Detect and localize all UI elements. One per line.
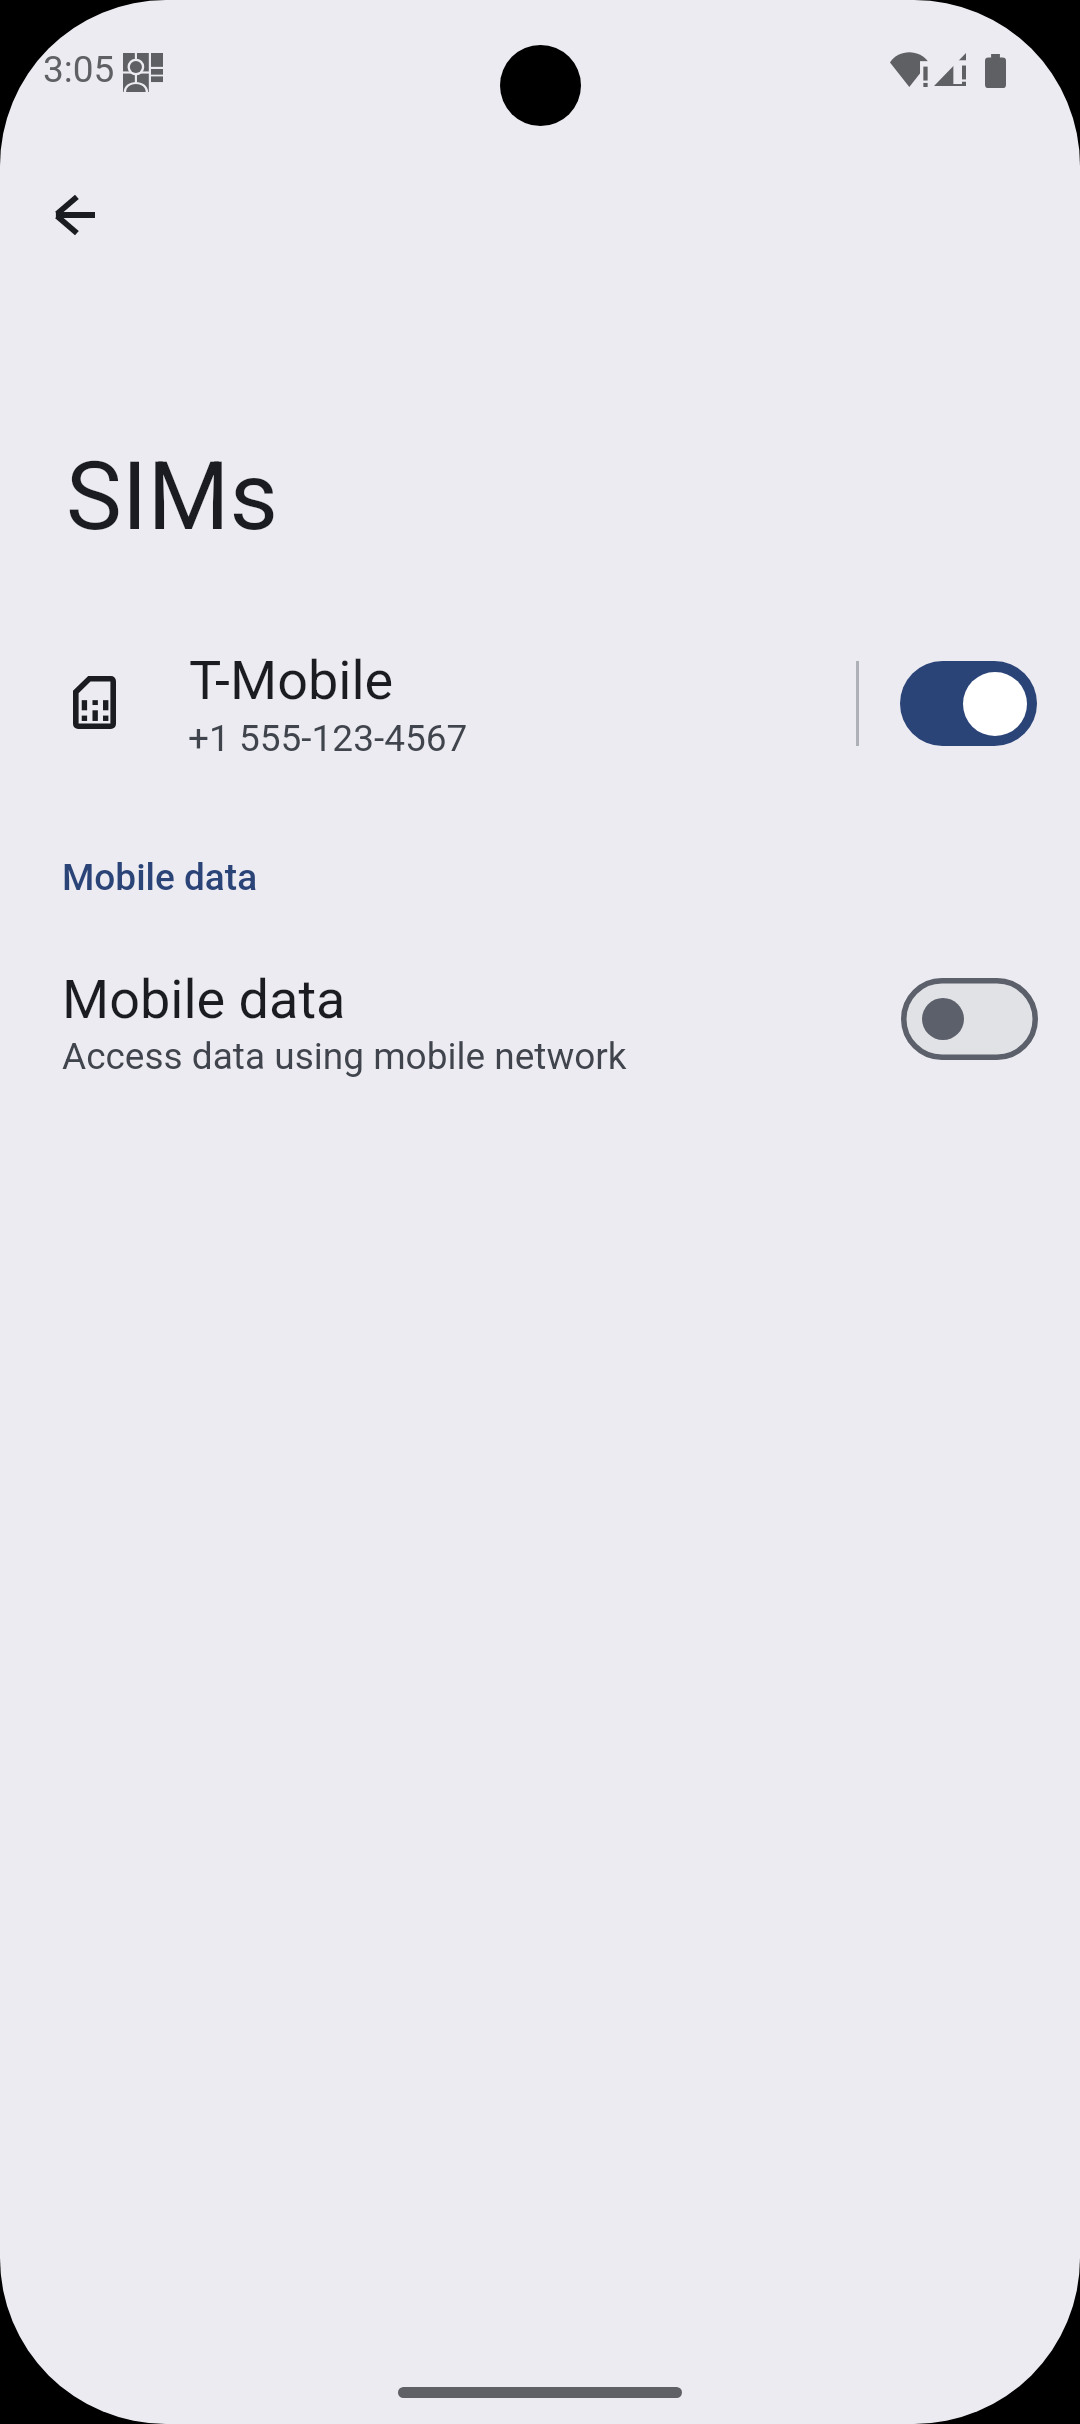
staticText: SIMs (66, 442, 278, 552)
button[interactable]: SIM enabled (900, 661, 1037, 746)
staticText: +1 555-123-4567 (188, 717, 468, 760)
button[interactable]: Mobile data (0, 952, 1080, 1092)
button[interactable]: Back (26, 167, 122, 263)
staticText: 3:05 (43, 48, 115, 91)
staticText: T-Mobile (189, 649, 394, 712)
staticText: Mobile data (62, 968, 346, 1031)
button[interactable]: Mobile data off (901, 978, 1038, 1060)
button[interactable]: T-Mobile (0, 632, 1080, 776)
staticText: Access data using mobile network (62, 1035, 627, 1078)
staticText: Mobile data (62, 856, 258, 899)
